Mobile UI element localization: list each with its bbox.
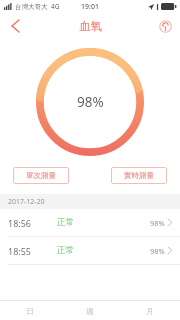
staticText: 日 — [26, 306, 34, 316]
staticText: 台灣大哥大 — [15, 3, 48, 11]
staticText: 正常 — [57, 217, 74, 228]
button[interactable]: 18:56 — [0, 209, 180, 237]
button[interactable]: 18:55 — [0, 237, 180, 265]
staticText: 4G — [51, 2, 60, 11]
button[interactable]: 單次測量 — [13, 167, 69, 184]
staticText: 週 — [86, 306, 94, 316]
staticText: 98% — [150, 218, 165, 228]
staticText: 單次測量 — [26, 171, 56, 180]
staticText: 18:55 — [8, 245, 32, 257]
staticText: 98% — [77, 93, 104, 111]
button[interactable]: 實時測量 — [111, 167, 167, 184]
staticText: 18:56 — [8, 217, 32, 229]
button[interactable]: Back — [0, 13, 30, 39]
staticText: 正常 — [57, 245, 74, 256]
button[interactable]: 週 — [60, 301, 120, 320]
staticText: 血氧 — [79, 19, 102, 33]
staticText: 98% — [150, 246, 165, 256]
button[interactable]: 日 — [0, 301, 60, 320]
staticText: 2017-12-20 — [8, 197, 45, 207]
button[interactable]: Help — [150, 13, 180, 39]
staticText: 實時測量 — [124, 171, 154, 180]
button[interactable]: 月 — [120, 301, 180, 320]
staticText: 19:01 — [81, 2, 99, 12]
staticText: 月 — [146, 306, 154, 316]
